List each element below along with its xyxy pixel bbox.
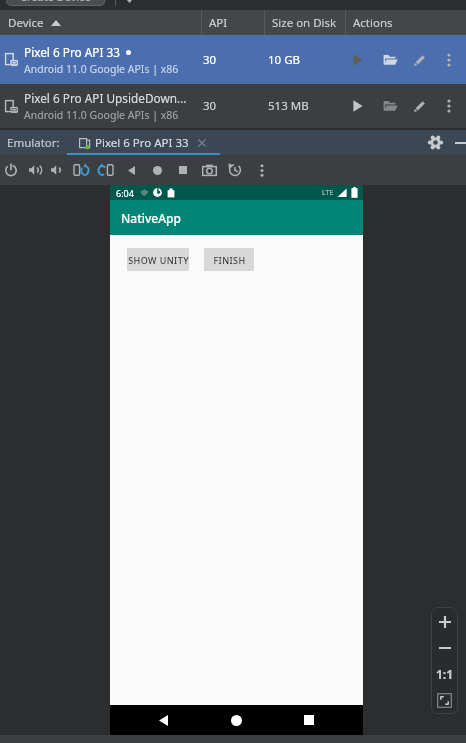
button[interactable]: Volume down (46, 155, 68, 185)
staticText: 1:1 (436, 666, 454, 682)
button[interactable]: Zoom to fit (431, 687, 458, 713)
staticText: Android 11.0 Google APIs | x86 (24, 108, 179, 122)
button[interactable]: Create Device (6, 0, 105, 6)
staticText: FINISH (213, 254, 246, 266)
button[interactable]: Run (347, 35, 369, 84)
staticText: 30 (203, 98, 217, 114)
staticText: 513 MB (268, 98, 309, 114)
button[interactable]: Pixel 6 Pro API 33 (0, 35, 466, 84)
staticText: Pixel 6 Pro API UpsideDown... (24, 90, 187, 106)
staticText: Size on Disk (272, 15, 337, 31)
button[interactable]: FINISH (204, 248, 254, 271)
button[interactable]: Open in Device File Explorer (379, 84, 401, 128)
button[interactable]: Edit (409, 84, 431, 128)
button[interactable]: Minimize (450, 130, 466, 155)
button[interactable]: Take screenshot (198, 155, 220, 185)
staticText: Device (8, 15, 44, 31)
button[interactable]: Recent apps (293, 705, 325, 735)
button[interactable]: Back (120, 155, 142, 185)
button[interactable]: More (251, 155, 273, 185)
button[interactable]: Run (347, 84, 369, 128)
staticText: API (209, 15, 228, 31)
button[interactable]: Home (146, 155, 168, 185)
staticText: NativeApp (121, 210, 181, 226)
button[interactable]: Rotate right (95, 155, 117, 185)
button[interactable]: Overview (172, 155, 194, 185)
staticText: 10 GB (268, 52, 300, 68)
button[interactable]: Volume up (24, 155, 46, 185)
button[interactable]: SHOW UNITY (127, 248, 189, 271)
button[interactable]: API (201, 10, 264, 35)
staticText: 30 (203, 52, 217, 68)
staticText: Emulator: (7, 135, 60, 151)
button[interactable]: Home (220, 705, 252, 735)
button[interactable]: Size on Disk (264, 10, 345, 35)
button[interactable]: Settings (424, 130, 447, 155)
button[interactable]: Device (0, 10, 201, 35)
staticText: Pixel 6 Pro API 33 (24, 44, 120, 60)
button[interactable]: Menu (438, 84, 460, 128)
staticText: 6:04 (116, 187, 134, 199)
staticText: Android 11.0 Google APIs | x86 (24, 62, 179, 76)
button[interactable]: Zoom in (431, 609, 458, 635)
button[interactable]: Zoom to actual size (431, 661, 458, 687)
staticText: SHOW UNITY (128, 254, 189, 266)
button[interactable]: Pixel 6 Pro API UpsideDown... (0, 84, 466, 128)
staticText: LTE (322, 188, 334, 198)
button[interactable]: Rotate left (70, 155, 92, 185)
button[interactable]: Power (0, 155, 22, 185)
button[interactable]: Pixel 6 Pro API 33 (67, 130, 220, 155)
staticText: Create Device (20, 0, 91, 4)
button[interactable]: Menu (438, 35, 460, 84)
staticText: Pixel 6 Pro API 33 (95, 135, 189, 151)
button[interactable]: Back (147, 705, 179, 735)
staticText: Actions (353, 15, 393, 31)
button[interactable]: Actions (345, 10, 466, 35)
button[interactable]: Zoom out (431, 635, 458, 661)
button[interactable]: Open in Device File Explorer (379, 35, 401, 84)
button[interactable]: Edit (409, 35, 431, 84)
button[interactable]: Rotate / Snapshots (224, 155, 246, 185)
